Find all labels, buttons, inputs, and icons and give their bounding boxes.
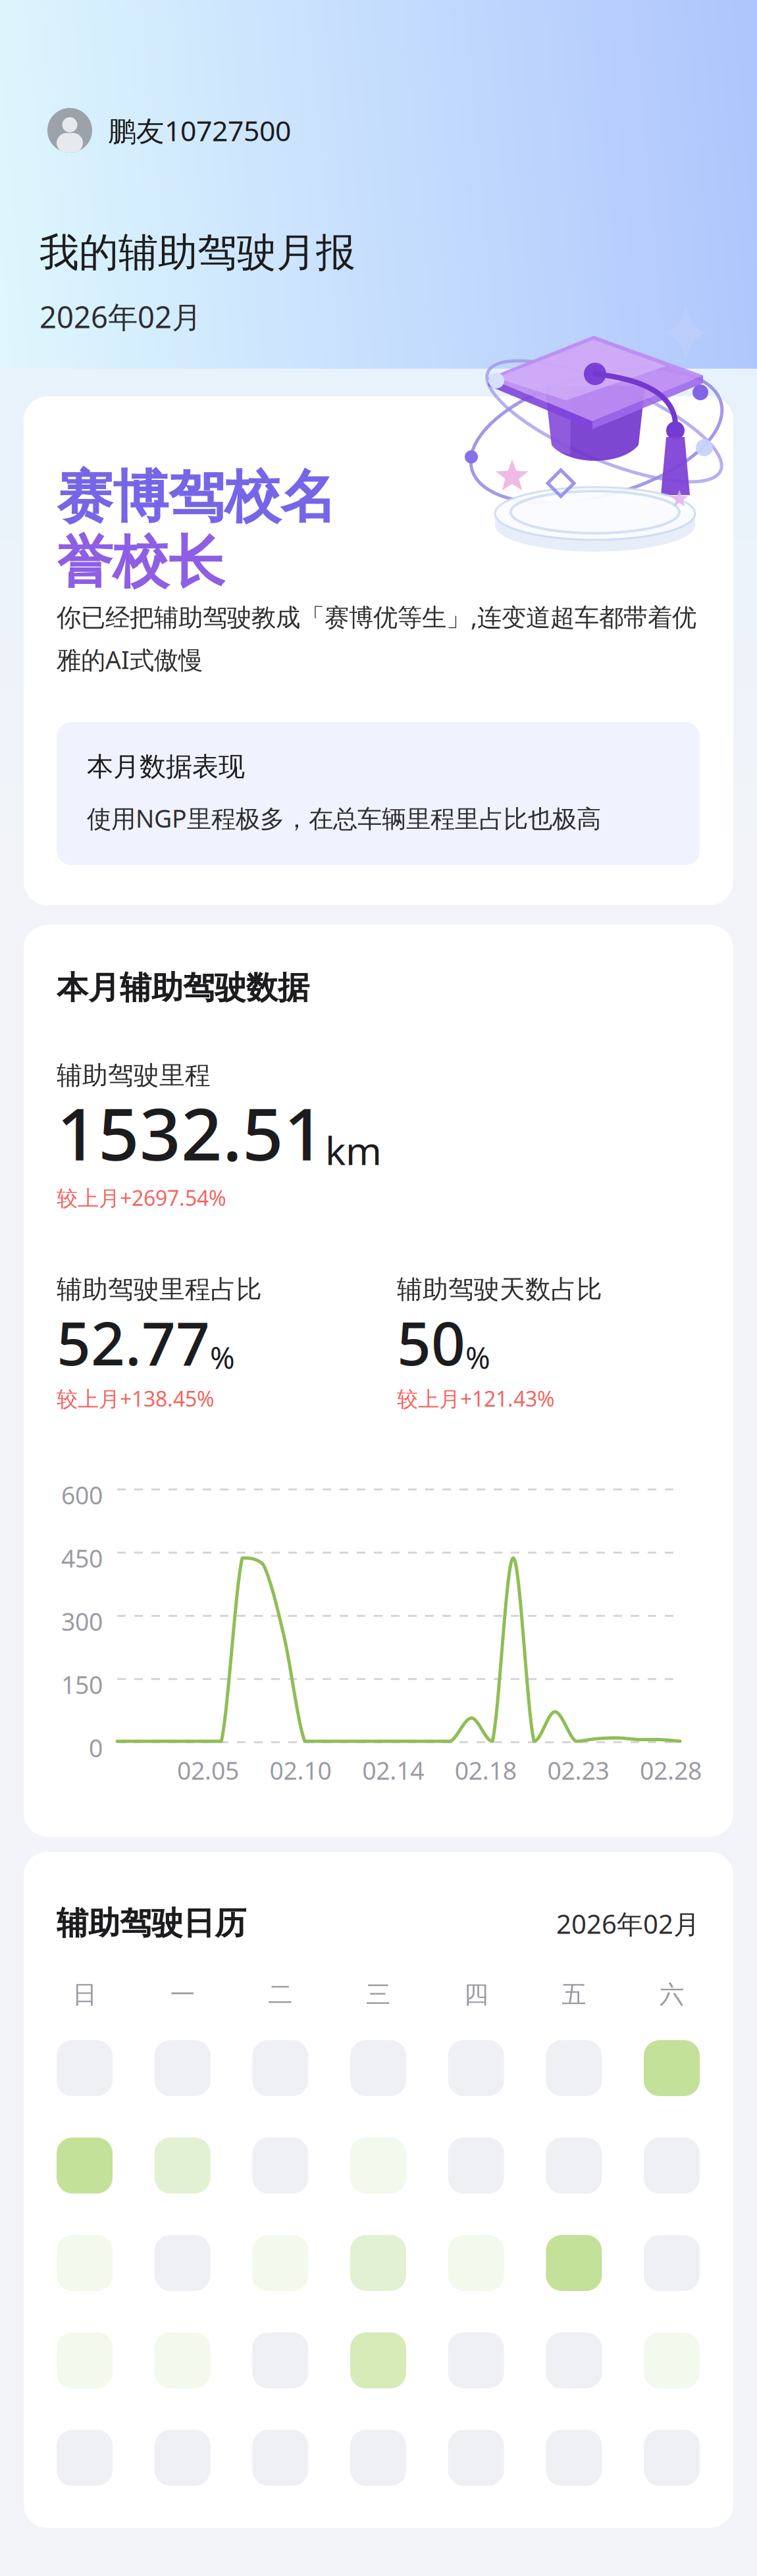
staticText: 0 (89, 1731, 103, 1764)
staticText: 雅的AI式傲慢 (57, 643, 203, 676)
staticText: 赛博驾校名 (57, 463, 336, 532)
staticText: 300 (61, 1605, 103, 1638)
staticText: 你已经把辅助驾驶教成「赛博优等生」,连变道超车都带着优 (57, 600, 696, 633)
staticText: 四 (464, 1980, 488, 2010)
staticText: 150 (61, 1668, 103, 1701)
staticText: 02.05 (177, 1754, 239, 1787)
staticText: 辅助驾驶天数占比 (397, 1274, 602, 1305)
staticText: 本月辅助驾驶数据 (57, 968, 309, 1007)
staticText: 本月数据表现 (87, 750, 245, 783)
staticText: 五 (562, 1980, 586, 2010)
staticText: 02.23 (547, 1754, 609, 1787)
staticText: 50 (397, 1303, 465, 1382)
staticText: 02.14 (362, 1754, 424, 1787)
staticText: % (210, 1338, 235, 1377)
staticText: 450 (61, 1542, 103, 1574)
staticText: 2026年02月 (556, 1906, 700, 1941)
staticText: 誉校长 (57, 528, 224, 597)
staticText: 使用NGP里程极多，在总车辆里程里占比也极高 (87, 802, 601, 834)
staticText: 2026年02月 (39, 297, 201, 336)
staticText: 二 (268, 1980, 292, 2010)
staticText: 02.28 (640, 1754, 702, 1787)
staticText: 我的辅助驾驶月报 (39, 228, 355, 277)
staticText: 一 (170, 1980, 195, 2010)
staticText: 02.18 (455, 1754, 517, 1787)
staticText: 较上月+2697.54% (57, 1184, 226, 1212)
staticText: 日 (72, 1980, 97, 2010)
staticText: 52.77 (57, 1303, 210, 1382)
staticText: 鹏友10727500 (108, 112, 291, 149)
staticText: % (465, 1338, 490, 1377)
staticText: 辅助驾驶日历 (57, 1904, 246, 1943)
staticText: 三 (366, 1980, 390, 2010)
staticText: 较上月+138.45% (57, 1384, 215, 1412)
staticText: km (325, 1124, 382, 1176)
button[interactable]: 鹏友10727500 (0, 108, 757, 153)
staticText: 辅助驾驶里程 (57, 1060, 211, 1091)
staticText: 600 (61, 1479, 103, 1511)
staticText: 1532.51 (57, 1085, 325, 1180)
staticText: 较上月+121.43% (397, 1384, 555, 1412)
staticText: 02.10 (270, 1754, 332, 1787)
staticText: 辅助驾驶里程占比 (57, 1274, 262, 1305)
staticText: 六 (660, 1980, 684, 2010)
